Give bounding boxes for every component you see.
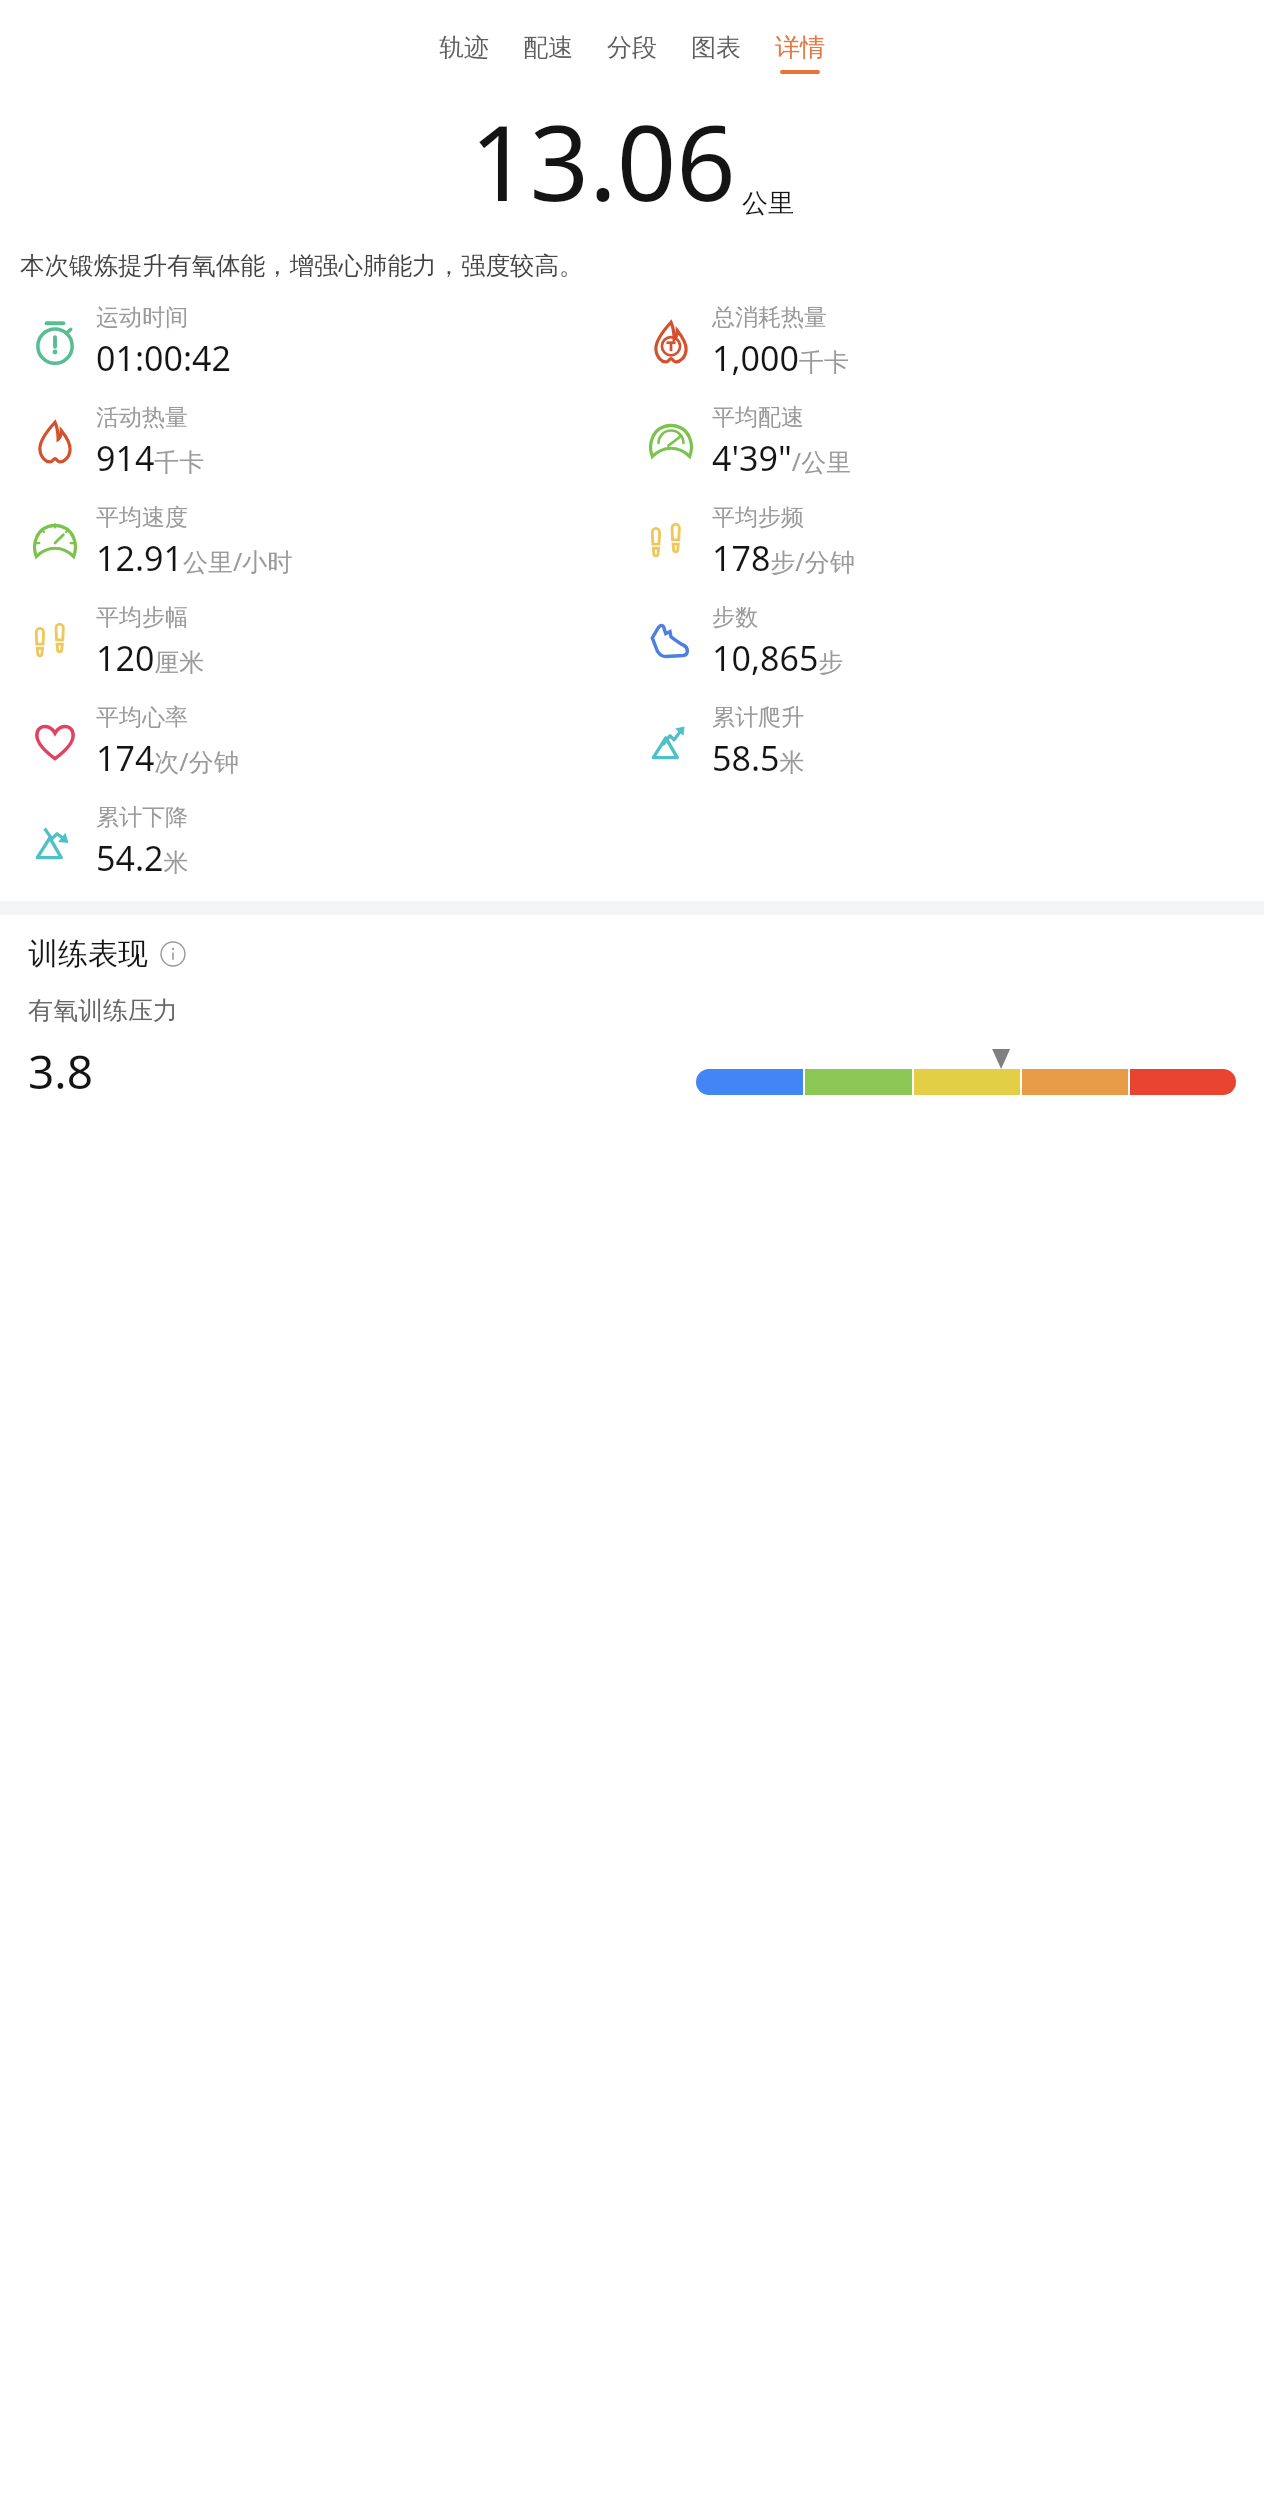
other: 活动热量 [26, 413, 84, 471]
staticText: 1,000千卡 [712, 335, 849, 381]
staticText: 平均步幅 [96, 603, 188, 632]
staticText: 累计下降 [96, 803, 188, 832]
button[interactable]: 图表 [674, 28, 758, 78]
staticText: 178步/分钟 [712, 535, 855, 581]
staticText: 活动热量 [96, 403, 188, 432]
other: 运动时间 [26, 313, 84, 371]
staticText: 12.91公里/小时 [96, 535, 293, 581]
other: 总消耗热量 [642, 313, 700, 371]
button[interactable]: 平均配速 [632, 403, 1264, 481]
button[interactable]: 运动时间 [0, 303, 632, 381]
staticText: 4'39"/公里 [712, 435, 852, 481]
staticText: 平均配速 [712, 403, 804, 432]
staticText: 公里 [742, 187, 794, 220]
other: 累计下降 [26, 813, 84, 871]
staticText: 分段 [607, 32, 657, 63]
staticText: 配速 [523, 32, 573, 63]
button[interactable]: 平均速度 [0, 503, 632, 581]
button[interactable]: 步数 [632, 603, 1264, 681]
button[interactable]: 累计爬升 [632, 703, 1264, 781]
staticText: 3.8 [28, 1040, 93, 1103]
other: 平均步频 [642, 513, 700, 571]
staticText: 13.06 [470, 90, 736, 232]
staticText: 图表 [691, 32, 741, 63]
other: 累计爬升 [642, 713, 700, 771]
button[interactable]: 信息 [158, 939, 188, 969]
staticText: 运动时间 [96, 303, 188, 332]
staticText: 120厘米 [96, 635, 205, 681]
button[interactable]: 详情 [758, 28, 842, 78]
staticText: 训练表现 [28, 935, 148, 973]
staticText: 步数 [712, 603, 758, 632]
staticText: 58.5米 [712, 735, 805, 781]
staticText: 平均心率 [96, 703, 188, 732]
staticText: 轨迹 [439, 32, 489, 63]
staticText: 累计爬升 [712, 703, 804, 732]
staticText: 174次/分钟 [96, 735, 239, 781]
button[interactable]: 总消耗热量 [632, 303, 1264, 381]
button[interactable]: 平均步幅 [0, 603, 632, 681]
button[interactable]: 平均心率 [0, 703, 632, 781]
staticText: 有氧训练压力 [28, 995, 178, 1026]
button[interactable]: 累计下降 [0, 803, 632, 881]
staticText: 10,865步 [712, 635, 844, 681]
staticText: 详情 [775, 32, 825, 63]
button[interactable]: 平均步频 [632, 503, 1264, 581]
button[interactable]: 分段 [590, 28, 674, 78]
staticText: 总消耗热量 [712, 303, 827, 332]
staticText: 平均步频 [712, 503, 804, 532]
other: 平均步幅 [26, 613, 84, 671]
other: 步数 [642, 613, 700, 671]
button[interactable]: 活动热量 [0, 403, 632, 481]
other: 平均心率 [26, 713, 84, 771]
staticText: 平均速度 [96, 503, 188, 532]
button[interactable]: 轨迹 [422, 28, 506, 78]
staticText: 914千卡 [96, 435, 205, 481]
staticText: 54.2米 [96, 835, 189, 881]
button[interactable]: 配速 [506, 28, 590, 78]
staticText: 01:00:42 [96, 335, 231, 381]
other: 平均速度 [26, 513, 84, 571]
other: 平均配速 [642, 413, 700, 471]
staticText: 本次锻炼提升有氧体能，增强心肺能力，强度较高。 [20, 250, 1244, 281]
